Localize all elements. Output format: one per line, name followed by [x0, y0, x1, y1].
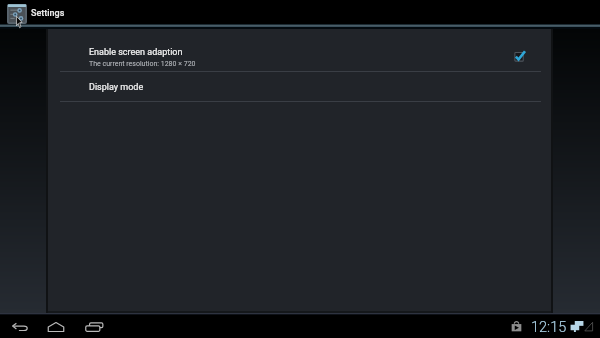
- other: Ethernet connected: [570, 321, 584, 332]
- button[interactable]: Enable screen adaption: [48, 36, 551, 71]
- button[interactable]: Play Store: [511, 321, 522, 332]
- button[interactable]: Recent apps: [85, 319, 104, 335]
- button[interactable]: Settings: [7, 3, 65, 24]
- other: Settings: [7, 4, 27, 24]
- staticText: 12:15: [531, 319, 567, 336]
- staticText: Enable screen adaption: [89, 47, 183, 58]
- other: Signal: [584, 321, 594, 332]
- staticText: Settings: [31, 8, 65, 19]
- button[interactable]: Home: [47, 319, 65, 335]
- staticText: The current resolution: 1280 × 720: [89, 60, 196, 68]
- staticText: Display mode: [89, 82, 144, 93]
- button[interactable]: Display mode: [48, 72, 551, 102]
- button[interactable]: Back: [11, 319, 29, 335]
